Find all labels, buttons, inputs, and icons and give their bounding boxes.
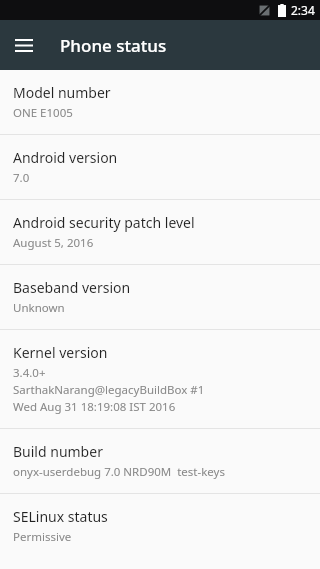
staticText: onyx-userdebug 7.0 NRD90M test-keys	[13, 464, 225, 480]
staticText: SarthakNarang@legacyBuildBox #1	[13, 382, 205, 398]
button[interactable]: Build number	[0, 429, 320, 493]
button[interactable]: Baseband version	[0, 265, 320, 329]
staticText: Baseband version	[13, 278, 131, 297]
staticText: 2:34	[291, 2, 315, 18]
staticText: 3.4.0+	[13, 365, 46, 381]
staticText: Wed Aug 31 18:19:08 IST 2016	[13, 399, 176, 415]
staticText: Build number	[13, 442, 103, 461]
button[interactable]: SELinux status	[0, 494, 320, 558]
button[interactable]: Open navigation menu	[4, 25, 44, 65]
button[interactable]: Android version	[0, 135, 320, 199]
staticText: Unknown	[13, 300, 65, 316]
button[interactable]: Model number	[0, 70, 320, 134]
staticText: Phone status	[60, 34, 167, 57]
staticText: ONE E1005	[13, 105, 73, 121]
staticText: Permissive	[13, 529, 72, 545]
staticText: SELinux status	[13, 507, 108, 526]
staticText: Model number	[13, 83, 111, 102]
staticText: Android security patch level	[13, 213, 195, 232]
staticText: 7.0	[13, 170, 30, 186]
button[interactable]: Android security patch level	[0, 200, 320, 264]
button[interactable]: Kernel version	[0, 330, 320, 428]
staticText: Kernel version	[13, 343, 108, 362]
staticText: Android version	[13, 148, 118, 167]
staticText: August 5, 2016	[13, 235, 94, 251]
